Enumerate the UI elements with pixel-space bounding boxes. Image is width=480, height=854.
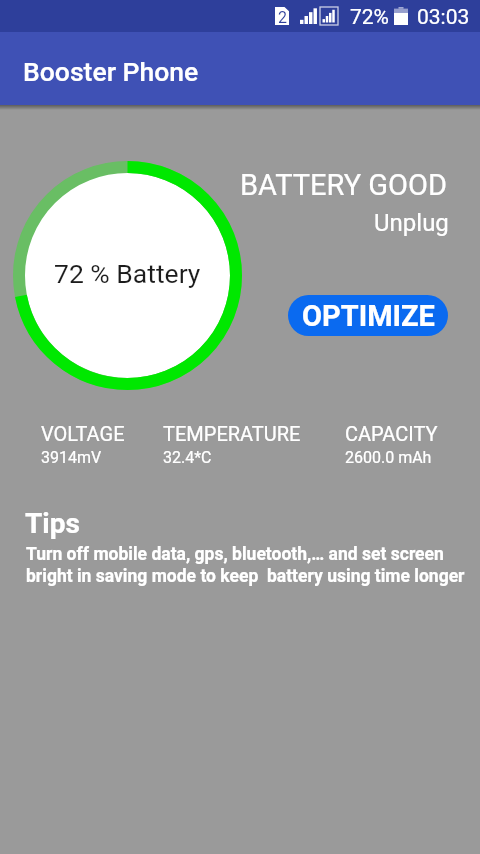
staticText: 32.4*C <box>163 448 212 467</box>
staticText: CAPACITY <box>345 422 438 445</box>
staticText: Booster Phone <box>23 56 199 87</box>
staticText: Turn off mobile data, gps, bluetooth,… a… <box>26 544 465 586</box>
staticText: OPTIMIZE <box>302 299 435 333</box>
staticText: VOLTAGE <box>41 422 125 445</box>
button[interactable]: OPTIMIZE <box>288 295 448 336</box>
staticText: 2 <box>278 8 287 26</box>
staticText: Tips <box>25 507 80 540</box>
staticText: TEMPERATURE <box>163 422 301 445</box>
staticText: BATTERY GOOD <box>240 168 447 202</box>
staticText: 3914mV <box>41 448 102 467</box>
staticText: 2600.0 mAh <box>345 448 432 467</box>
staticText: 72% <box>350 5 389 30</box>
staticText: 72 % Battery <box>54 258 201 289</box>
staticText: 03:03 <box>417 5 470 30</box>
staticText: Unplug <box>374 209 449 237</box>
